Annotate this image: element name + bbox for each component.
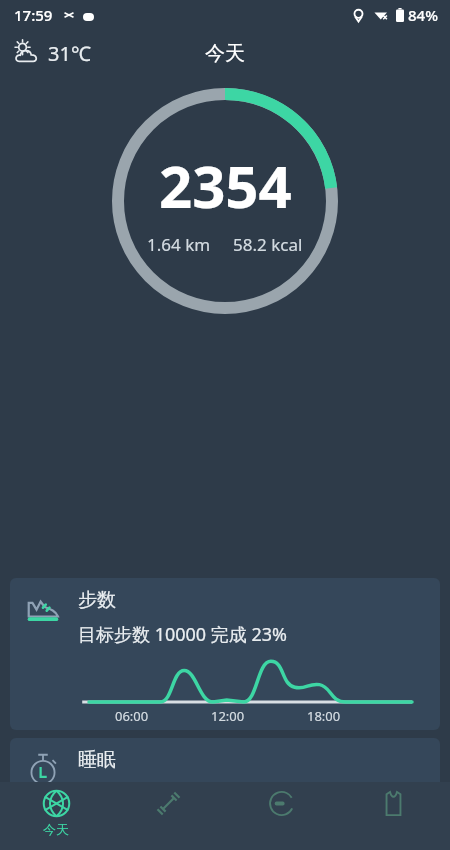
- staticText: 84%: [408, 5, 438, 25]
- staticText: 1.64 km: [147, 233, 211, 256]
- button[interactable]: Step progress ring: [112, 88, 338, 314]
- button[interactable]: 睡眠: [10, 738, 440, 850]
- staticText: 17:59: [14, 5, 53, 25]
- button[interactable]: Profile: [337, 782, 450, 850]
- staticText: 步数: [78, 588, 116, 612]
- staticText: 12:00: [211, 707, 245, 725]
- button[interactable]: 今天: [0, 782, 112, 850]
- staticText: 睡眠: [78, 748, 116, 772]
- staticText: 睡眠时长 8时20分: [78, 782, 222, 807]
- staticText: 今天: [205, 41, 245, 66]
- staticText: 31℃: [48, 40, 91, 67]
- staticText: 今天: [43, 821, 69, 837]
- button[interactable]: Workout: [112, 782, 224, 850]
- button[interactable]: 步数: [10, 578, 440, 730]
- staticText: 目标步数 10000 完成 23%: [78, 622, 288, 647]
- button[interactable]: Device: [224, 782, 337, 850]
- button[interactable]: 31℃: [6, 33, 97, 73]
- staticText: 2354: [159, 146, 292, 225]
- staticText: 06:00: [115, 707, 149, 725]
- staticText: 58.2 kcal: [233, 233, 303, 256]
- staticText: 18:00: [307, 707, 341, 725]
